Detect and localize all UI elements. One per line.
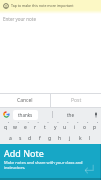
button[interactable]: thanks xyxy=(13,110,38,120)
button[interactable]: r xyxy=(30,123,40,132)
staticText: q xyxy=(4,124,8,131)
staticText: Add Note xyxy=(4,147,44,159)
button[interactable]: q xyxy=(1,123,10,132)
staticText: o xyxy=(83,124,87,131)
button[interactable]: Tap to make this note more important xyxy=(0,0,101,14)
staticText: Cancel xyxy=(17,97,33,104)
button[interactable]: s xyxy=(15,132,25,144)
button[interactable]: e xyxy=(20,123,30,132)
button[interactable]: the xyxy=(67,112,74,118)
staticText: instructors. xyxy=(4,165,26,170)
button[interactable]: y xyxy=(50,123,60,132)
button[interactable]: t xyxy=(40,123,50,132)
button[interactable]: a xyxy=(6,132,15,144)
button[interactable]: Enter your note xyxy=(0,14,101,93)
staticText: i xyxy=(74,124,76,131)
button[interactable]: g xyxy=(45,132,55,144)
button[interactable] xyxy=(3,111,10,118)
staticText: y xyxy=(54,124,57,131)
staticText: p xyxy=(93,124,97,131)
staticText: Enter your note xyxy=(3,16,36,22)
button[interactable]: u xyxy=(60,123,70,132)
staticText: g xyxy=(48,135,52,142)
button[interactable]: f xyxy=(35,132,45,144)
staticText: r xyxy=(34,124,37,131)
staticText: e xyxy=(24,124,27,131)
staticText: k xyxy=(79,135,82,142)
button[interactable]: h xyxy=(55,132,65,144)
staticText: the xyxy=(67,112,74,118)
staticText: w xyxy=(13,124,17,131)
button[interactable]: k xyxy=(75,132,85,144)
button[interactable]: w xyxy=(10,123,20,132)
button[interactable]: o xyxy=(80,123,90,132)
staticText: j xyxy=(69,135,71,142)
staticText: u xyxy=(63,124,67,131)
button[interactable]: Add Note xyxy=(0,144,101,180)
staticText: t xyxy=(44,124,46,131)
staticText: s xyxy=(19,135,22,142)
staticText: Tap to make this note more important xyxy=(11,3,74,8)
button[interactable]: Cancel xyxy=(0,94,50,107)
staticText: Make notes and share with your class and xyxy=(4,160,83,165)
staticText: Post xyxy=(71,97,82,104)
button[interactable]: p xyxy=(90,123,100,132)
staticText: a xyxy=(9,135,12,142)
staticText: f xyxy=(39,135,41,142)
button[interactable]: j xyxy=(65,132,75,144)
staticText: d xyxy=(28,135,32,142)
staticText: thanks xyxy=(18,112,33,118)
button[interactable]: i xyxy=(70,123,80,132)
staticText: l xyxy=(89,135,91,142)
button[interactable]: d xyxy=(25,132,35,144)
button[interactable]: l xyxy=(85,132,95,144)
button[interactable]: Post xyxy=(51,94,101,107)
staticText: h xyxy=(58,135,62,142)
button[interactable] xyxy=(93,112,99,118)
